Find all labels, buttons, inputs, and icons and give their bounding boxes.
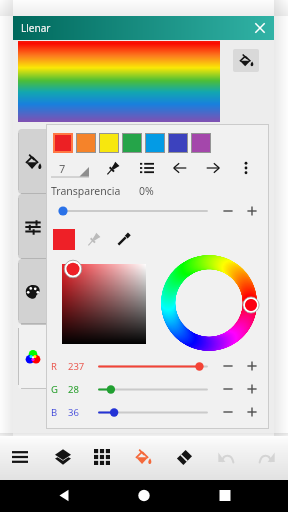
button[interactable]: Eraser <box>167 440 201 474</box>
staticText: Llenar <box>21 21 51 35</box>
button[interactable]: Grid <box>85 440 119 474</box>
staticText: 0% <box>139 184 154 198</box>
button[interactable]: Colour 1 <box>53 133 73 153</box>
staticText: 36 <box>68 406 79 419</box>
staticText: R <box>51 360 57 373</box>
button[interactable]: Increase <box>243 403 261 421</box>
staticText: G <box>51 383 58 396</box>
button[interactable]: Menu <box>3 440 37 474</box>
staticText: B <box>51 406 58 419</box>
button[interactable]: Transparency slider <box>46 200 269 222</box>
button[interactable]: Back <box>48 480 80 512</box>
button[interactable]: Increase <box>243 357 261 375</box>
button[interactable]: Layers <box>46 440 80 474</box>
button[interactable]: List view <box>137 158 157 178</box>
button[interactable]: Decrease <box>219 380 237 398</box>
staticText: 28 <box>68 383 79 396</box>
button[interactable]: Previous <box>170 158 190 178</box>
button[interactable]: Decrease <box>219 357 237 375</box>
button[interactable]: Colour picker <box>114 229 134 249</box>
button[interactable]: Next <box>203 158 223 178</box>
button[interactable]: Palette tab <box>18 259 46 324</box>
button[interactable]: G value <box>46 378 269 401</box>
button[interactable]: Pin colour <box>84 229 104 249</box>
button[interactable]: Channels tab <box>18 324 46 389</box>
button[interactable]: Llenar <box>13 16 274 40</box>
button[interactable]: Home <box>128 480 160 512</box>
button[interactable]: Palette count <box>51 157 89 179</box>
staticText: Transparencia <box>51 184 121 198</box>
button[interactable]: Recents <box>209 480 241 512</box>
button[interactable]: Fill tool <box>126 440 160 474</box>
button[interactable]: Colour 7 <box>191 133 211 153</box>
staticText: 237 <box>68 360 85 373</box>
button[interactable]: Decrease <box>219 202 237 220</box>
button[interactable]: Undo <box>209 440 243 474</box>
button[interactable]: Redo <box>250 440 284 474</box>
button[interactable]: B value <box>46 401 269 424</box>
button[interactable]: Increase <box>243 380 261 398</box>
button[interactable]: Adjust tab <box>18 194 46 259</box>
button[interactable]: Colour 2 <box>76 133 96 153</box>
button[interactable]: R value <box>46 355 269 378</box>
button[interactable]: Pin <box>103 158 123 178</box>
button[interactable]: Colour 5 <box>145 133 165 153</box>
button[interactable]: Decrease <box>219 403 237 421</box>
button[interactable]: Colour 4 <box>122 133 142 153</box>
button[interactable]: Close <box>251 19 269 37</box>
button[interactable]: Colour 3 <box>99 133 119 153</box>
button[interactable]: Fill tool <box>233 49 259 72</box>
staticText: 7 <box>59 161 66 176</box>
button[interactable]: Hue <box>242 296 260 314</box>
button[interactable]: More options <box>236 158 256 178</box>
button[interactable]: Colour 6 <box>168 133 188 153</box>
button[interactable]: Increase <box>243 202 261 220</box>
button[interactable]: Fill tab <box>18 129 46 194</box>
